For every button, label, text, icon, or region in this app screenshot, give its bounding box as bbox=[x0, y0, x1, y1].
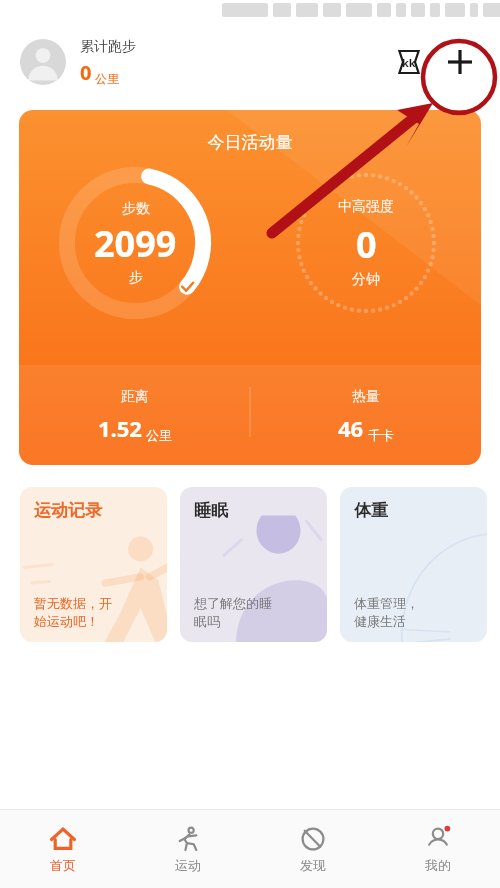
button[interactable]: 运动记录 bbox=[20, 487, 167, 642]
button[interactable]: 发现 bbox=[250, 810, 375, 888]
staticText: 分钟 bbox=[352, 271, 380, 289]
staticText: 千卡 bbox=[368, 427, 394, 443]
staticText: 我的 bbox=[425, 857, 451, 873]
button[interactable]: 我的 bbox=[375, 810, 500, 888]
staticText: 运动记录 bbox=[34, 500, 102, 521]
staticText: 中高强度 bbox=[338, 198, 394, 216]
button[interactable]: kk bbox=[392, 45, 426, 79]
staticText: 1.52 bbox=[98, 413, 142, 443]
staticText: 距离 bbox=[121, 388, 149, 406]
button[interactable]: Add bbox=[440, 42, 480, 82]
staticText: 睡眠 bbox=[194, 500, 228, 521]
staticText: 2099 bbox=[94, 219, 177, 268]
staticText: 累计跑步 bbox=[80, 38, 136, 56]
staticText: 暂无数据，开 始运动吧！ bbox=[34, 595, 112, 630]
staticText: 公里 bbox=[95, 71, 119, 86]
staticText: 0 bbox=[356, 220, 377, 269]
staticText: 0 bbox=[80, 59, 92, 86]
button[interactable]: 体重 bbox=[340, 487, 487, 642]
staticText: kk bbox=[402, 55, 416, 70]
staticText: 发现 bbox=[300, 857, 326, 873]
staticText: 公里 bbox=[146, 427, 172, 443]
staticText: 步数 bbox=[122, 200, 150, 218]
staticText: 首页 bbox=[50, 857, 76, 873]
staticText: 想了解您的睡 眠吗 bbox=[194, 595, 272, 630]
staticText: 体重 bbox=[354, 500, 388, 521]
button[interactable]: Profile bbox=[20, 39, 66, 85]
staticText: 今日活动量 bbox=[19, 132, 481, 153]
staticText: 体重管理， 健康生活 bbox=[354, 595, 419, 630]
staticText: 运动 bbox=[175, 857, 201, 873]
button[interactable]: 首页 bbox=[0, 810, 125, 888]
button[interactable]: 今日活动量 bbox=[19, 110, 481, 465]
button[interactable]: 运动 bbox=[125, 810, 250, 888]
button[interactable]: 睡眠 bbox=[180, 487, 327, 642]
staticText: 热量 bbox=[352, 388, 380, 406]
staticText: 步 bbox=[129, 269, 143, 287]
staticText: 46 bbox=[338, 413, 364, 443]
